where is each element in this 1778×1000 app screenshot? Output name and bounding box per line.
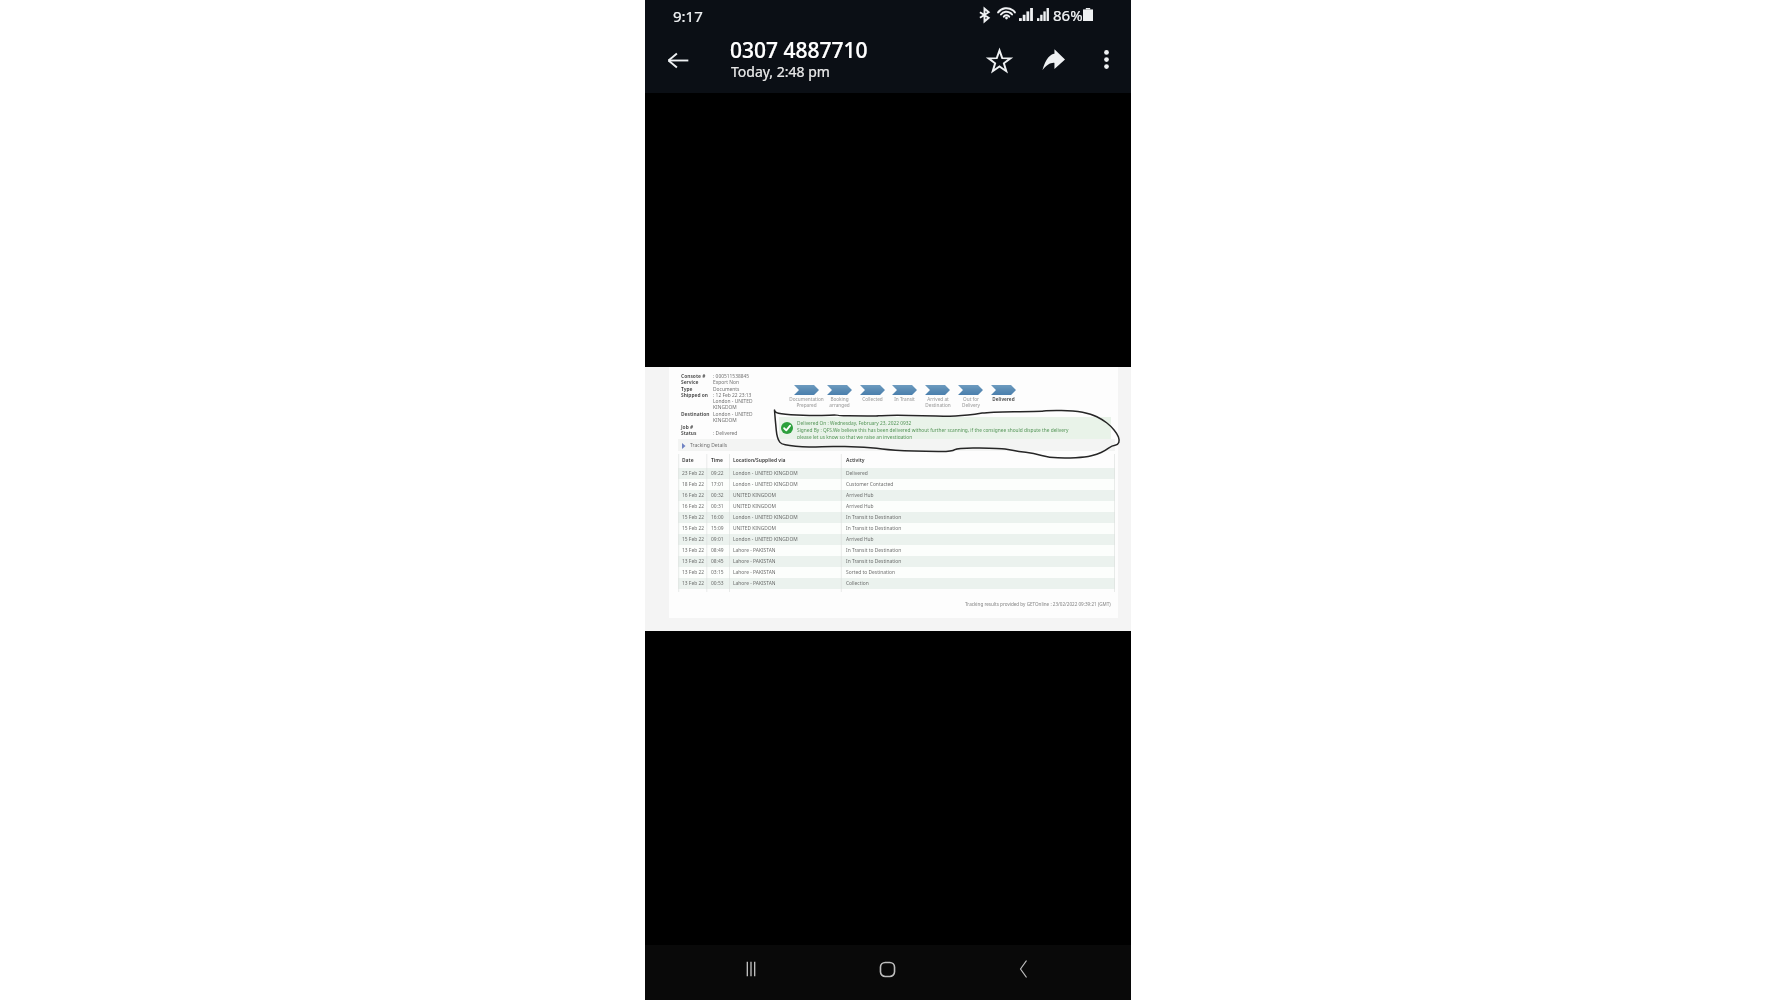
staticText: 09:01 [711,536,730,543]
staticText: London - UNITED KINGDOM [733,470,842,477]
button[interactable]: Home [861,945,913,993]
staticText: Lahore - PAKISTAN [733,580,842,587]
staticText: UNITED KINGDOM [733,503,842,510]
staticText: Date [682,457,707,464]
staticText: Booking arranged [829,396,850,408]
staticText: 13 Feb 22 [682,569,707,576]
staticText: 13 Feb 22 [682,547,707,554]
staticText: In Transit to Destination [846,514,902,521]
staticText: KINGDOM [713,417,737,424]
staticText: Tracking results provided by GETOnline :… [965,601,1111,607]
staticText: Export Non [713,379,740,386]
staticText: 16 Feb 22 [682,492,707,499]
staticText: 00:32 [711,492,730,499]
staticText: 09:22 [711,470,730,477]
staticText: 13 Feb 22 [682,558,707,565]
staticText: Lahore - PAKISTAN [733,569,842,576]
staticText: 00:53 [711,580,730,587]
button[interactable]: Back [997,945,1049,993]
staticText: UNITED KINGDOM [733,525,842,532]
staticText: In Transit to Destination [846,558,902,565]
staticText: 13 Feb 22 [682,580,707,587]
staticText: 08:49 [711,547,730,554]
staticText: Consote # [681,373,713,380]
staticText: Destination [681,411,713,418]
staticText: : 000511538845 [713,373,750,380]
staticText: please let us know so that we raise an i… [797,434,913,441]
staticText: Type [681,386,713,393]
button[interactable]: More options [1085,38,1127,80]
staticText: 18 Feb 22 [682,481,707,488]
staticText: Lahore - PAKISTAN [733,547,842,554]
staticText: 15 Feb 22 [682,536,707,543]
staticText: London - UNITED KINGDOM [733,514,842,521]
staticText: 0307 4887710 [730,36,868,65]
staticText: London - UNITED [713,398,753,405]
staticText: Collected [862,396,883,402]
button[interactable]: Recent apps [725,945,777,993]
button[interactable]: Favourite [977,38,1021,82]
staticText: Out for Delivery [962,396,980,408]
staticText: 15:09 [711,525,730,532]
staticText: Location/Supplied via [733,457,842,464]
staticText: Collection [846,580,869,587]
staticText: Documentation Prepared [789,396,824,408]
staticText: Job # [681,424,713,431]
staticText: London - UNITED KINGDOM [733,481,842,488]
staticText: Delivered [846,470,868,477]
staticText: Tracking Details [690,442,728,449]
staticText: Lahore - PAKISTAN [733,558,842,565]
staticText: Sorted to Destination [846,569,895,576]
staticText: Signed By : QFS.We believe this has been… [797,427,1069,434]
staticText: KINGDOM [713,404,737,411]
staticText: Time [711,457,730,464]
staticText: 15 Feb 22 [682,514,707,521]
staticText: Arrived at Destination [925,396,951,408]
staticText: London - UNITED [713,411,753,418]
staticText: 16 Feb 22 [682,503,707,510]
staticText: In Transit [894,396,915,402]
staticText: Shipped on [681,392,713,399]
staticText: 23 Feb 22 [682,470,707,477]
staticText: In Transit to Destination [846,525,902,532]
button[interactable]: Share [1031,38,1075,82]
staticText: Arrived Hub [846,536,874,543]
staticText: Today, 2:48 pm [731,62,830,81]
staticText: 15 Feb 22 [682,525,707,532]
staticText: Service [681,379,713,386]
staticText: 08:45 [711,558,730,565]
staticText: : Delivered [713,430,738,437]
staticText: In Transit to Destination [846,547,902,554]
staticText: Arrived Hub [846,503,874,510]
button[interactable]: Back [656,38,700,82]
staticText: : 12 Feb 22 23:13 [713,392,752,399]
staticText: Customer Contacted [846,481,894,488]
staticText: Arrived Hub [846,492,874,499]
staticText: Documents [713,386,740,393]
staticText: 86% [1053,5,1083,25]
staticText: 00:31 [711,503,730,510]
staticText: Status [681,430,713,437]
staticText: Delivered [992,396,1015,402]
staticText: 03:15 [711,569,730,576]
staticText: UNITED KINGDOM [733,492,842,499]
staticText: Activity [846,457,865,464]
staticText: Delivered On : Wednesday, February 23, 2… [797,420,912,427]
staticText: London - UNITED KINGDOM [733,536,842,543]
staticText: 17:01 [711,481,730,488]
staticText: 16:00 [711,514,730,521]
staticText: 9:17 [673,6,703,26]
